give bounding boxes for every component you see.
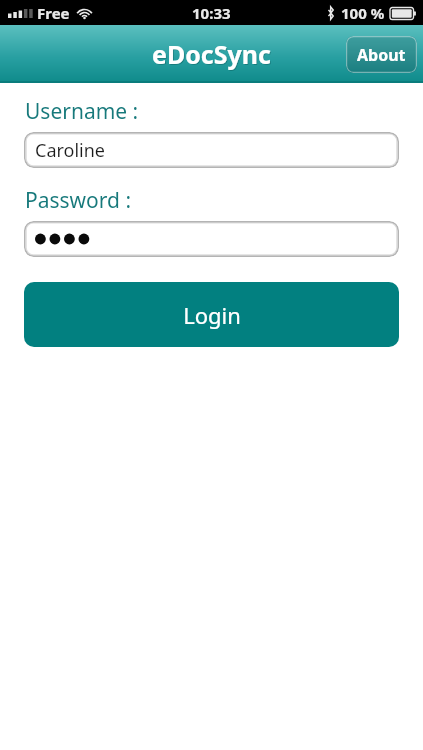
button[interactable] — [24, 221, 399, 257]
staticText: Caroline — [35, 138, 106, 163]
staticText: About — [357, 44, 406, 66]
staticText: 10:33 — [192, 3, 231, 23]
staticText: eDocSync — [153, 38, 272, 72]
button[interactable]: Login — [24, 282, 399, 347]
staticText: 100 % — [341, 3, 385, 23]
staticText: Password : — [25, 186, 132, 215]
staticText: eDocSync — [152, 37, 271, 71]
button[interactable]: Caroline — [24, 132, 399, 168]
staticText: Login — [183, 300, 241, 330]
staticText: Free — [37, 3, 70, 23]
staticText: Username : — [25, 97, 139, 126]
button[interactable]: About — [346, 36, 417, 73]
